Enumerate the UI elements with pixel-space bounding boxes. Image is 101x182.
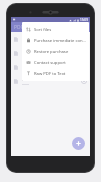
staticText: Moby Dick bbox=[22, 63, 43, 69]
button[interactable]: Purchase immediate conversions bbox=[22, 35, 89, 46]
button[interactable]: Add file bbox=[72, 137, 85, 150]
staticText: Alice in Wonderland bbox=[22, 77, 62, 83]
button[interactable]: Restore purchase bbox=[22, 46, 89, 57]
button[interactable]: Don Quixote bbox=[11, 46, 90, 60]
staticText: Restore purchase bbox=[34, 49, 69, 55]
button[interactable]: Beowulf bbox=[11, 32, 90, 46]
staticText: Contact support bbox=[34, 60, 66, 66]
button[interactable]: Contact support bbox=[22, 57, 89, 68]
staticText: Don Quixote bbox=[22, 49, 47, 55]
staticText: 15:09 bbox=[80, 18, 88, 22]
staticText: Sort files bbox=[34, 27, 52, 33]
button[interactable]: Remove bbox=[81, 78, 87, 84]
staticText: Purchase immediate conversions bbox=[34, 38, 87, 44]
staticText: PDF bbox=[14, 24, 24, 31]
button[interactable]: Alice in Wonderland bbox=[11, 74, 90, 88]
button[interactable]: Sort files bbox=[22, 24, 89, 35]
button[interactable]: Raw PDF to Text bbox=[22, 68, 89, 79]
staticText: Raw PDF to Text bbox=[34, 71, 66, 77]
button[interactable]: PDF bbox=[11, 22, 90, 32]
button[interactable]: Moby Dick bbox=[11, 60, 90, 74]
staticText: Beowulf bbox=[22, 35, 38, 41]
